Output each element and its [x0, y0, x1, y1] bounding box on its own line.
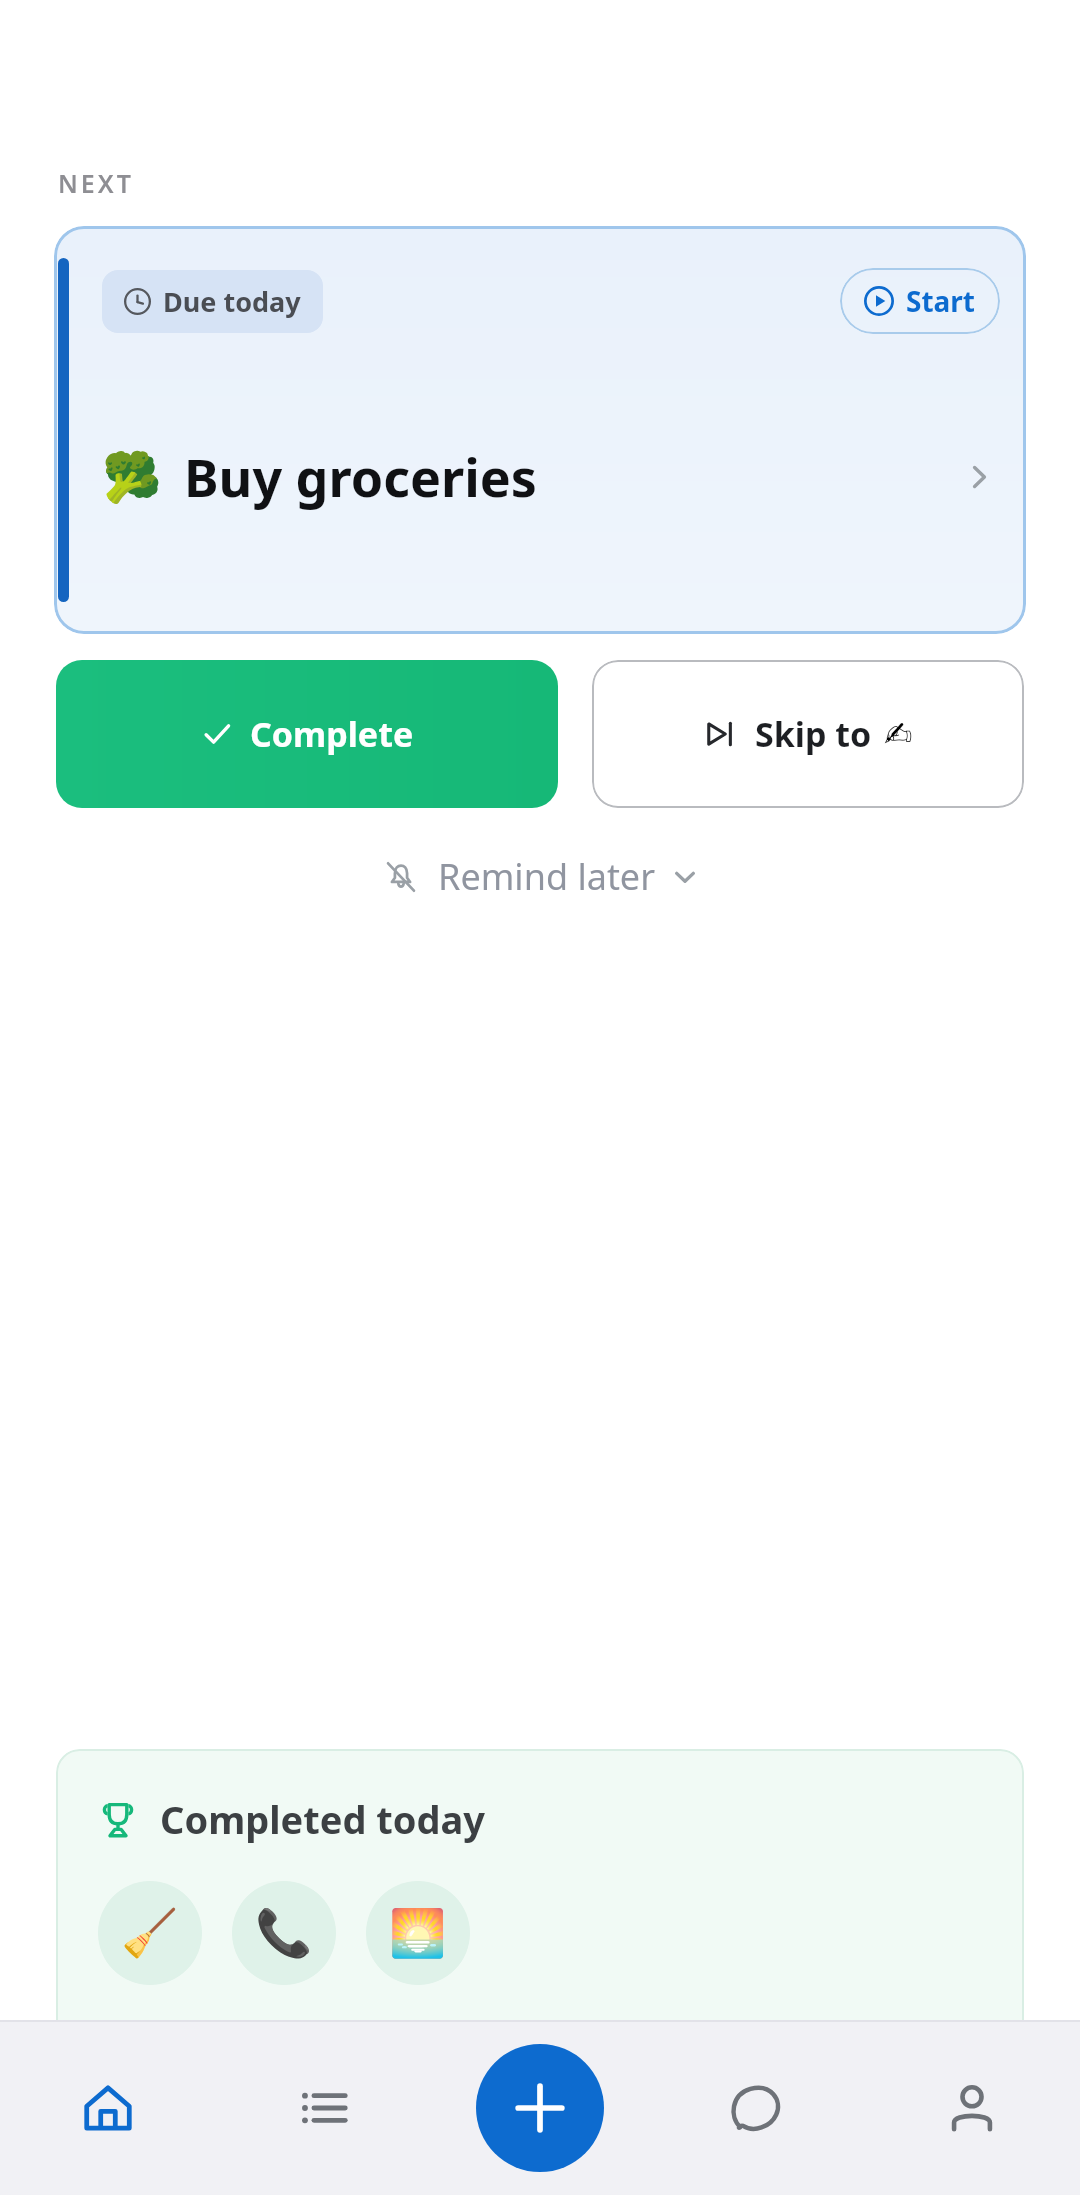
button[interactable]: Add	[476, 2044, 604, 2172]
staticText: ✍️	[884, 714, 913, 754]
staticText: Start	[906, 282, 976, 320]
staticText: Completed today	[160, 1793, 486, 1845]
staticText: 🧹	[121, 1906, 179, 1960]
button[interactable]: Chat	[648, 2020, 864, 2195]
button[interactable]: Due today	[102, 270, 323, 333]
staticText: Due today	[163, 283, 301, 320]
button[interactable]: Profile	[864, 2020, 1080, 2195]
staticText: Complete	[250, 711, 414, 757]
button[interactable]: 🧹	[98, 1881, 202, 1985]
staticText: Reflect	[702, 2091, 821, 2137]
button[interactable]: Lists	[216, 2020, 432, 2195]
staticText: Skip to	[755, 711, 872, 757]
staticText: NEXT	[58, 166, 134, 200]
button[interactable]: Reflect	[702, 2091, 821, 2137]
button[interactable]: Complete	[56, 660, 558, 808]
staticText: 7 thoughts captured today.	[260, 2091, 702, 2137]
button[interactable]: Start	[840, 268, 1000, 334]
button[interactable]: 🌅	[366, 1881, 470, 1985]
button[interactable]: 📞	[232, 1881, 336, 1985]
button[interactable]: Home	[0, 2020, 216, 2195]
staticText: 🥦	[102, 449, 162, 505]
staticText: 🌅	[389, 1906, 447, 1960]
staticText: Remind later	[438, 852, 656, 901]
button[interactable]: Completed today	[56, 1749, 1024, 2049]
staticText: Buy groceries	[184, 441, 537, 512]
button[interactable]: Due today	[54, 226, 1026, 634]
button[interactable]: Remind later	[364, 842, 716, 911]
staticText: 📞	[255, 1906, 313, 1960]
button[interactable]: Skip to	[592, 660, 1024, 808]
